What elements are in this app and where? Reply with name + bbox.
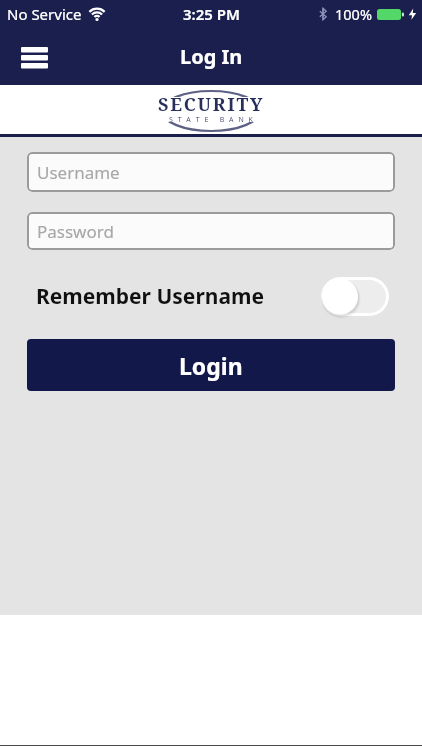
button[interactable]: Login <box>27 339 395 391</box>
staticText: 3:25 PM <box>183 4 240 24</box>
button[interactable] <box>321 277 389 316</box>
staticText: Remember Username <box>36 282 265 311</box>
button[interactable]: Password <box>27 212 395 250</box>
button[interactable] <box>12 37 56 77</box>
staticText: Log In <box>180 43 243 70</box>
button[interactable]: Username <box>27 152 395 192</box>
staticText: Password <box>37 220 114 243</box>
staticText: Login <box>179 350 243 381</box>
staticText: Username <box>37 161 120 184</box>
staticText: SECURITY <box>158 92 265 117</box>
staticText: 100% <box>335 4 372 24</box>
staticText: No Service <box>7 4 82 24</box>
staticText: S T A T E B A N K <box>169 115 255 125</box>
